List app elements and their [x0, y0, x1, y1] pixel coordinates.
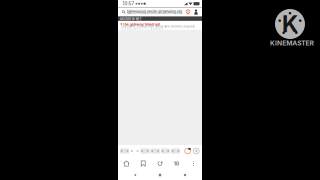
staticText: KINEMASTER	[270, 39, 313, 47]
button[interactable]: Tab	[151, 148, 160, 154]
button[interactable]: New tab	[192, 147, 200, 155]
button[interactable]: Tabs	[168, 157, 185, 170]
button[interactable]: Home	[152, 170, 168, 180]
staticText: K	[282, 10, 298, 38]
staticText: Check the connection string and retry th…	[121, 25, 196, 28]
button[interactable]: More options	[185, 157, 202, 170]
button[interactable]: Tab	[120, 148, 129, 154]
button[interactable]: Account	[192, 7, 200, 16]
staticText: ARCBREW NET	[120, 17, 142, 21]
button[interactable]: Reload	[152, 157, 168, 170]
button[interactable]: Tab	[130, 148, 139, 154]
staticText: Reference 0x80070005 · tgreenwood	[121, 27, 161, 30]
button[interactable]: Tab	[140, 148, 150, 154]
button[interactable]: Tab manager	[184, 147, 191, 155]
staticText: tgreenwood.onsite.arcbrewing.org	[127, 10, 182, 14]
staticText: 10	[174, 160, 180, 167]
button[interactable]: Bookmarks	[135, 157, 152, 170]
staticText: 10:57	[122, 1, 134, 6]
button[interactable]: Brave Shields	[184, 7, 192, 16]
staticText: The gateway timed out	[123, 22, 160, 26]
button[interactable]: Recent apps	[177, 170, 193, 180]
button[interactable]: Back	[127, 170, 143, 180]
button[interactable]: Tab	[171, 148, 180, 154]
button[interactable]: Home	[118, 157, 135, 170]
button[interactable]: Tab	[161, 148, 170, 154]
